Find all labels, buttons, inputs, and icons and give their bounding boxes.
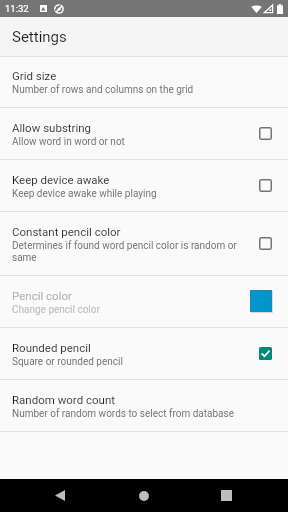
button[interactable]: Unchecked — [259, 127, 272, 140]
button[interactable]: Recent apps — [198, 479, 254, 512]
staticText: Keep device awake — [12, 173, 110, 186]
staticText: Number of random words to select from da… — [12, 408, 234, 420]
button[interactable]: Grid size — [0, 57, 288, 108]
button[interactable]: Checked — [259, 347, 272, 360]
staticText: Constant pencil color — [12, 225, 121, 238]
staticText: Settings — [12, 28, 67, 46]
button[interactable]: Rounded pencil — [0, 328, 288, 380]
staticText: Keep device awake while playing — [12, 188, 157, 200]
button[interactable]: Unchecked — [259, 237, 272, 250]
staticText: Allow substring — [12, 121, 92, 134]
button[interactable]: Pencil color swatch — [250, 290, 272, 312]
button[interactable]: Allow substring — [0, 108, 288, 160]
staticText: Determines if found word pencil color is… — [12, 240, 251, 264]
button[interactable]: Back — [32, 479, 88, 512]
staticText: Allow word in word or not — [12, 136, 125, 148]
staticText: Square or rounded pencil — [12, 356, 123, 368]
staticText: Rounded pencil — [12, 341, 91, 354]
staticText: Change pencil color — [12, 304, 100, 316]
button[interactable]: Keep device awake — [0, 160, 288, 212]
button[interactable]: Unchecked — [259, 179, 272, 192]
button[interactable]: Home — [116, 479, 172, 512]
button[interactable]: Constant pencil color — [0, 212, 288, 276]
staticText: Grid size — [12, 69, 57, 82]
staticText: Number of rows and columns on the grid — [12, 84, 194, 96]
button[interactable]: Pencil color — [0, 276, 288, 328]
staticText: Pencil color — [12, 289, 72, 302]
staticText: 11:32 — [5, 3, 29, 14]
button[interactable]: Random word count — [0, 380, 288, 432]
staticText: Random word count — [12, 393, 116, 406]
